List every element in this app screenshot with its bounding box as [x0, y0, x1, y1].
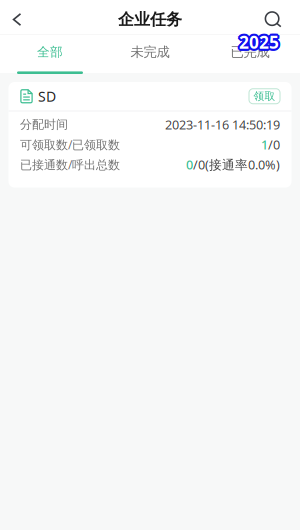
staticText: 1 [261, 136, 268, 153]
staticText: 2025 [238, 29, 278, 53]
staticText: 2025 [238, 32, 278, 56]
button[interactable]: 全部 [0, 35, 100, 73]
staticText: 2025 [241, 31, 281, 55]
button[interactable]: 领取 [249, 89, 280, 104]
staticText: 2025 [237, 29, 277, 53]
staticText: 2025 [240, 32, 280, 56]
staticText: 企业任务 [118, 9, 182, 30]
staticText: 可领取数/已领取数 [20, 136, 120, 153]
staticText: 已接通数/呼出总数 [20, 156, 120, 173]
staticText: 2025 [240, 28, 280, 52]
staticText: 2025 [240, 29, 280, 53]
staticText: 2025 [238, 31, 278, 55]
staticText: 2025 [239, 30, 279, 54]
staticText: 2025 [239, 32, 279, 55]
button[interactable]: 未完成 [100, 35, 200, 73]
staticText: 未完成 [130, 44, 169, 60]
staticText: 2025 [239, 29, 279, 52]
staticText: 2025 [238, 28, 278, 52]
button[interactable]: 已完成 [200, 35, 300, 73]
staticText: 领取 [253, 89, 275, 103]
button[interactable]: Search [246, 0, 300, 35]
staticText: /0(接通率0.0%) [193, 156, 280, 173]
staticText: 已完成 [230, 44, 269, 60]
staticText: 2025 [240, 30, 280, 54]
staticText: 全部 [37, 44, 63, 60]
staticText: /0 [268, 136, 280, 153]
staticText: 2025 [240, 31, 280, 55]
staticText: 2025 [237, 31, 277, 55]
staticText: 分配时间 [20, 117, 68, 132]
staticText: SD [38, 87, 56, 106]
staticText: 2025 [241, 29, 281, 53]
staticText: 2025 [237, 30, 277, 54]
staticText: 2023-11-16 14:50:19 [165, 116, 280, 133]
button[interactable]: Back [0, 0, 34, 35]
staticText: 0 [186, 156, 193, 173]
